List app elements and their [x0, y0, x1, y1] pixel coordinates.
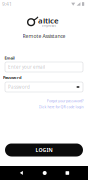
- staticText: Enter your email: [8, 64, 45, 70]
- button[interactable]: Click here for QR code login: [38, 105, 83, 109]
- button[interactable]: Back: [19, 170, 24, 175]
- staticText: Email: [5, 55, 15, 61]
- staticText: Click here for QR code login: [38, 105, 83, 109]
- staticText: Password: [8, 84, 30, 90]
- staticText: Password: [3, 75, 22, 80]
- button[interactable]: Forgot your password?: [47, 99, 84, 103]
- button[interactable]: LOGIN: [5, 143, 83, 156]
- staticText: 9:41: [2, 0, 12, 7]
- button[interactable]: Home: [43, 171, 47, 175]
- staticText: empresas: [41, 23, 55, 28]
- staticText: LOGIN: [35, 146, 52, 154]
- button[interactable]: Recent apps: [66, 171, 69, 175]
- staticText: altice: [38, 15, 59, 26]
- staticText: Forgot your password?: [47, 99, 84, 103]
- staticText: Remote Assistance: [22, 32, 65, 39]
